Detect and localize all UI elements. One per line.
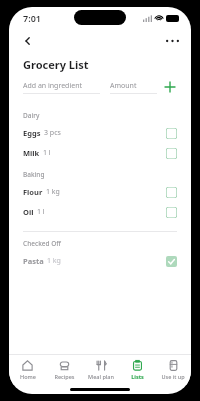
button[interactable]: Use it up bbox=[155, 355, 191, 385]
staticText: Pasta bbox=[23, 256, 44, 266]
staticText: Flour bbox=[23, 187, 43, 197]
staticText: 3 pcs bbox=[44, 128, 61, 138]
button[interactable]: Unchecked bbox=[166, 148, 177, 159]
staticText: Amount bbox=[110, 81, 137, 91]
staticText: Baking bbox=[23, 170, 191, 179]
staticText: 1 l bbox=[37, 207, 45, 217]
staticText: Grocery List bbox=[23, 57, 89, 72]
staticText: Oil bbox=[23, 207, 34, 217]
button[interactable]: Recipes bbox=[46, 355, 83, 385]
button[interactable]: Pasta bbox=[9, 251, 191, 271]
staticText: Use it up bbox=[161, 373, 185, 380]
button[interactable]: Flour bbox=[9, 182, 191, 202]
staticText: Add an ingredient bbox=[23, 81, 83, 91]
button[interactable]: Amount bbox=[110, 81, 157, 94]
staticText: 7:01 bbox=[23, 12, 41, 24]
button[interactable]: Add item bbox=[163, 80, 177, 94]
button[interactable]: Add an ingredient bbox=[23, 81, 100, 94]
button[interactable]: Eggs bbox=[9, 123, 191, 143]
button[interactable]: Unchecked bbox=[166, 128, 177, 139]
staticText: Meal plan bbox=[88, 373, 114, 380]
button[interactable]: Milk bbox=[9, 143, 191, 163]
staticText: Dairy bbox=[23, 111, 191, 120]
button[interactable]: More options bbox=[161, 30, 183, 52]
staticText: Milk bbox=[23, 148, 40, 158]
button[interactable]: Unchecked bbox=[166, 187, 177, 198]
button[interactable]: Meal plan bbox=[83, 355, 119, 385]
staticText: Checked Off bbox=[23, 239, 191, 248]
staticText: Home bbox=[20, 373, 36, 380]
button[interactable]: Oil bbox=[9, 202, 191, 222]
staticText: 1 l bbox=[43, 148, 51, 158]
staticText: Eggs bbox=[23, 128, 41, 138]
button[interactable]: Home bbox=[9, 355, 46, 385]
staticText: 1 kg bbox=[47, 256, 61, 266]
button[interactable]: Back bbox=[17, 30, 39, 52]
button[interactable]: Lists bbox=[119, 355, 155, 385]
staticText: 1 kg bbox=[46, 187, 60, 197]
staticText: Lists bbox=[131, 373, 144, 380]
button[interactable]: Checked bbox=[166, 256, 177, 267]
staticText: Recipes bbox=[54, 373, 75, 380]
button[interactable]: Unchecked bbox=[166, 207, 177, 218]
